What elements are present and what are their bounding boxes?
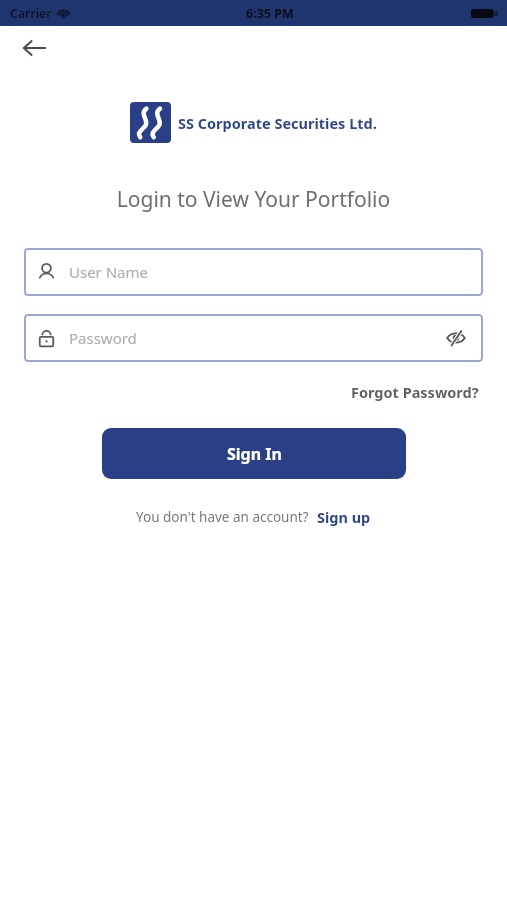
staticText: Carrier [10,5,52,22]
staticText: 6:35 PM [246,5,294,22]
staticText: Password [69,328,137,348]
button[interactable]: Back [12,26,56,70]
button[interactable]: User Name [24,248,483,296]
staticText: Forgot Password? [351,382,479,402]
staticText: User Name [69,262,149,282]
staticText: Sign up [317,507,371,527]
button[interactable]: Forgot Password? [347,378,483,406]
staticText: Sign In [227,443,282,465]
button[interactable]: Show password [441,323,471,353]
button[interactable]: Sign In [102,428,406,479]
button[interactable]: Sign up [317,507,371,527]
staticText: SS Corporate Securities Ltd. [178,113,377,133]
button[interactable]: Password [24,314,483,362]
staticText: Login to View Your Portfolio [16,185,491,214]
staticText: You don't have an account? [136,508,309,526]
